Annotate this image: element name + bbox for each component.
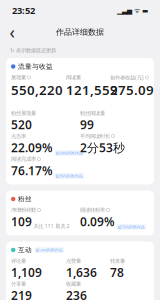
staticText: 1,109 xyxy=(11,264,42,280)
staticText: 关注 111 取关 2 xyxy=(34,222,70,229)
staticText: 净增粉丝数 xyxy=(11,207,36,213)
staticText: 76.17% xyxy=(11,163,53,178)
staticText: 阅读量 xyxy=(66,74,81,81)
staticText: 转发量 xyxy=(110,258,125,264)
staticText: 109 xyxy=(11,213,32,229)
staticText: 点赞量 xyxy=(66,258,81,264)
staticText: 275.09 xyxy=(110,81,154,99)
staticText: 创作者收益(元) xyxy=(110,74,144,81)
staticText: 2分53秒 xyxy=(80,140,125,155)
staticText: ‹ xyxy=(9,20,14,43)
staticText: ↻ xyxy=(10,47,14,54)
staticText: 粉丝 xyxy=(18,195,32,203)
staticText: 作品详细数据 xyxy=(56,27,104,37)
staticText: 互动 xyxy=(18,246,32,254)
staticText: 超74%同类作品 xyxy=(36,247,63,253)
staticText: 平均阅读时长 xyxy=(80,133,110,139)
staticText: 表示数据延迟更新 xyxy=(16,47,56,54)
staticText: 0.09% xyxy=(80,213,115,229)
staticText: 121,559 xyxy=(66,81,118,99)
staticText: ▁▃▅ ᯤ ▬ xyxy=(117,6,148,15)
staticText: 超96%同类作品 xyxy=(56,173,83,179)
staticText: 阅读完成率 xyxy=(11,156,36,162)
staticText: 1,636 xyxy=(66,264,97,280)
staticText: 22.09% xyxy=(11,140,53,155)
staticText: 点击率 xyxy=(11,133,26,139)
staticText: 23:52 xyxy=(12,4,35,17)
staticText: 550,220 xyxy=(11,81,63,99)
staticText: 评论量 xyxy=(11,258,26,264)
staticText: 219 xyxy=(11,287,32,300)
staticText: 超99%同类作品 xyxy=(56,150,83,156)
staticText: 520 xyxy=(11,117,32,133)
button[interactable]: 返回 xyxy=(3,23,21,41)
staticText: 78 xyxy=(110,264,124,280)
staticText: 流量与收益 xyxy=(18,62,53,71)
staticText: 收藏量 xyxy=(66,281,81,287)
staticText: 粉丝阅读量 xyxy=(80,110,105,116)
staticText: 超76%同类作品 xyxy=(118,224,145,230)
staticText: 粉丝展现量 xyxy=(11,110,36,116)
staticText: 99 xyxy=(80,117,94,133)
staticText: 阅读转粉率 xyxy=(80,207,105,213)
staticText: 236 xyxy=(66,287,87,300)
staticText: 分享量 xyxy=(11,281,26,287)
staticText: 展现量 xyxy=(11,74,26,81)
